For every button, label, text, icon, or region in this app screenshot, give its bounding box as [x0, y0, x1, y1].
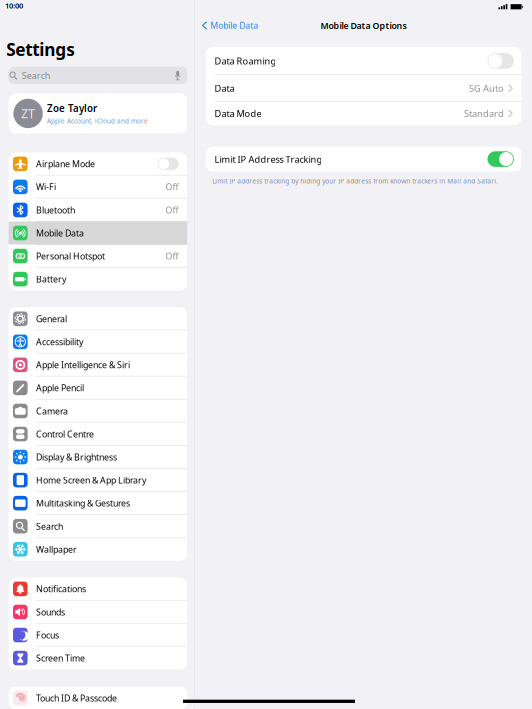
button[interactable]: Data Roaming [206, 47, 521, 75]
staticText: General [36, 313, 67, 325]
button[interactable]: Control Centre [9, 422, 187, 446]
staticText: Search [22, 69, 51, 82]
staticText: Apple Pencil [36, 382, 84, 394]
button[interactable]: Mobile Data [9, 221, 187, 245]
button[interactable]: Airplane Mode [9, 152, 187, 175]
staticText: Zoe Taylor [47, 102, 97, 115]
button[interactable]: Bluetooth [9, 198, 187, 221]
button[interactable]: Limit IP Address Tracking [206, 147, 521, 172]
button[interactable]: Mobile Data [195, 17, 262, 34]
staticText: Home Screen & App Library [36, 474, 146, 486]
staticText: Screen Time [36, 652, 85, 664]
staticText: Wallpaper [36, 543, 77, 555]
staticText: Mobile Data [210, 20, 258, 31]
button[interactable]: Screen Time [9, 646, 187, 670]
staticText: Display & Brightness [36, 451, 117, 463]
button[interactable]: Data [206, 75, 521, 102]
button[interactable]: Touch ID & Passcode [9, 686, 187, 709]
staticText: Multitasking & Gestures [36, 497, 130, 509]
staticText: Standard [464, 107, 504, 120]
staticText: Limit IP Address Tracking [214, 153, 322, 165]
button[interactable]: Notifications [9, 577, 187, 600]
button[interactable]: ZT [9, 93, 187, 134]
staticText: Off [166, 204, 179, 216]
staticText: Personal Hotspot [36, 250, 105, 262]
staticText: Control Centre [36, 428, 94, 440]
staticText: Focus [36, 629, 59, 641]
staticText: Sounds [36, 606, 65, 618]
staticText: Apple Intelligence & Siri [36, 359, 130, 371]
staticText: Off [166, 181, 179, 193]
button[interactable]: General [9, 307, 187, 330]
staticText: Battery [36, 273, 66, 285]
staticText: Search [36, 520, 63, 532]
button[interactable]: Battery [9, 268, 187, 291]
staticText: Off [166, 250, 179, 262]
staticText: Wi-Fi [36, 181, 56, 193]
staticText: Accessibility [36, 336, 83, 348]
staticText: Mobile Data [36, 227, 84, 239]
staticText: Apple Account, iCloud and more [47, 116, 148, 125]
button[interactable]: Focus [9, 623, 187, 647]
staticText: 10:00 [5, 0, 23, 11]
button[interactable]: Camera [9, 399, 187, 422]
staticText: Limit IP address tracking by hiding your… [212, 177, 498, 185]
button[interactable]: Search [9, 67, 187, 84]
button[interactable]: Accessibility [9, 330, 187, 353]
staticText: Settings [6, 38, 75, 61]
button[interactable]: Sounds [9, 600, 187, 623]
button[interactable]: Search [9, 515, 187, 538]
staticText: Data [214, 82, 234, 94]
button[interactable]: Display & Brightness [9, 445, 187, 469]
button[interactable]: Apple Intelligence & Siri [9, 353, 187, 376]
staticText: Notifications [36, 583, 86, 595]
staticText: Bluetooth [36, 204, 75, 216]
button[interactable]: Apple Pencil [9, 376, 187, 399]
staticText: Camera [36, 405, 68, 417]
button[interactable]: Data Mode [206, 102, 521, 125]
staticText: Airplane Mode [36, 158, 95, 170]
staticText: Data Roaming [214, 55, 276, 67]
staticText: Data Mode [214, 107, 261, 120]
staticText: 5G Auto [469, 82, 504, 94]
staticText: Mobile Data Options [321, 19, 407, 31]
button[interactable]: Home Screen & App Library [9, 469, 187, 492]
button[interactable]: Wallpaper [9, 538, 187, 561]
staticText: Touch ID & Passcode [36, 692, 117, 704]
button[interactable]: Wi-Fi [9, 175, 187, 198]
button[interactable]: Personal Hotspot [9, 244, 187, 268]
button[interactable]: Multitasking & Gestures [9, 492, 187, 515]
staticText: ZT [21, 105, 35, 122]
